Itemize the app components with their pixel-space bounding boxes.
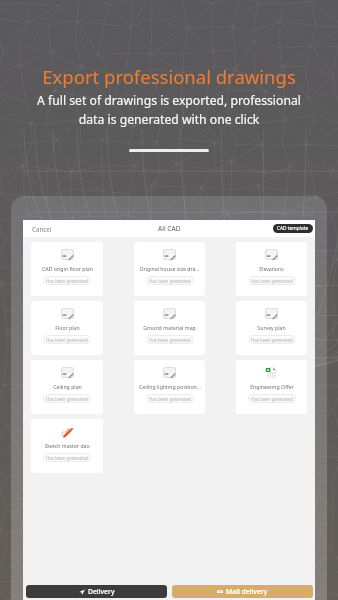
staticText: Original house size dra... (139, 265, 200, 272)
button[interactable]: Floor plan (31, 301, 103, 355)
staticText: Has been generated (149, 337, 191, 343)
staticText: CAD origin floor plan (42, 265, 93, 272)
button[interactable]: Elevations (236, 242, 307, 296)
staticText: A full set of drawings is exported, prof… (0, 92, 338, 127)
button[interactable]: Delivery (26, 585, 167, 598)
button[interactable]: Survey plan (236, 301, 307, 355)
button[interactable]: Ceiling lighting position... (134, 360, 205, 414)
staticText: Survey plan (257, 324, 286, 331)
staticText: Elevations (259, 265, 284, 272)
button[interactable]: Cancel (23, 222, 58, 236)
button[interactable]: CAD template (273, 224, 313, 233)
staticText: Ceiling plan (53, 383, 82, 390)
button[interactable]: Ceiling plan (31, 360, 103, 414)
staticText: Has been generated (46, 337, 88, 343)
staticText: CAD template (277, 225, 309, 232)
button[interactable]: Sketch master dao (31, 419, 103, 473)
staticText: Export professional drawings (0, 64, 338, 89)
staticText: Floor plan (55, 324, 80, 331)
staticText: Has been generated (149, 396, 191, 402)
button[interactable]: Mail delivery (172, 585, 313, 598)
staticText: Has been generated (251, 278, 293, 284)
button[interactable]: Engineering Offer (236, 360, 307, 414)
staticText: Has been generated (251, 396, 293, 402)
staticText: Engineering Offer (250, 383, 294, 390)
staticText: Ceiling lighting position... (139, 383, 201, 390)
staticText: Has been generated (46, 278, 88, 284)
staticText: Mail delivery (226, 587, 268, 596)
button[interactable]: Ground material map (134, 301, 205, 355)
staticText: Has been generated (149, 278, 191, 284)
staticText: Has been generated (251, 337, 293, 343)
staticText: Has been generated (46, 455, 88, 461)
staticText: Delivery (88, 587, 115, 596)
staticText: Cancel (32, 225, 52, 233)
button[interactable]: CAD origin floor plan (31, 242, 103, 296)
staticText: Has been generated (46, 396, 88, 402)
button[interactable]: Original house size dra... (134, 242, 205, 296)
staticText: All CAD (158, 224, 181, 233)
staticText: Sketch master dao (44, 442, 90, 449)
staticText: Ground material map (143, 324, 196, 331)
